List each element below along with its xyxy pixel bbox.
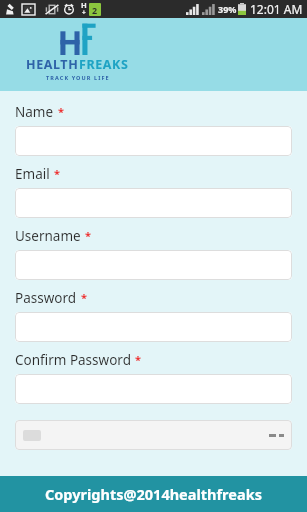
staticText: * bbox=[58, 104, 64, 119]
staticText: H bbox=[81, 0, 87, 10]
button[interactable]: Email bbox=[15, 188, 292, 218]
button[interactable]: Confirm Password bbox=[15, 374, 292, 404]
button[interactable]: Copyrights@2014healthfreaks bbox=[0, 476, 307, 512]
staticText: + bbox=[82, 8, 86, 16]
staticText: * bbox=[85, 228, 91, 243]
button[interactable]: Name bbox=[15, 126, 292, 156]
staticText: Copyrights@2014healthfreaks bbox=[45, 484, 262, 504]
staticText: TRACK YOUR LIFE bbox=[46, 74, 110, 81]
button[interactable] bbox=[15, 420, 292, 450]
staticText: 12:01 AM bbox=[250, 1, 303, 17]
staticText: Name bbox=[15, 103, 54, 121]
staticText: * bbox=[81, 290, 87, 305]
staticText: Password bbox=[15, 289, 77, 307]
staticText: Confirm Password bbox=[15, 351, 131, 369]
button[interactable]: Password bbox=[15, 312, 292, 342]
staticText: * bbox=[54, 166, 60, 181]
button[interactable]: Username bbox=[15, 250, 292, 280]
staticText: Username bbox=[15, 227, 81, 245]
staticText: Email bbox=[15, 165, 50, 183]
staticText: 2 bbox=[92, 4, 98, 16]
staticText: HEALTH bbox=[26, 56, 79, 73]
staticText: * bbox=[135, 352, 141, 367]
staticText: 39% bbox=[218, 3, 237, 15]
staticText: FREAKS bbox=[79, 56, 129, 73]
